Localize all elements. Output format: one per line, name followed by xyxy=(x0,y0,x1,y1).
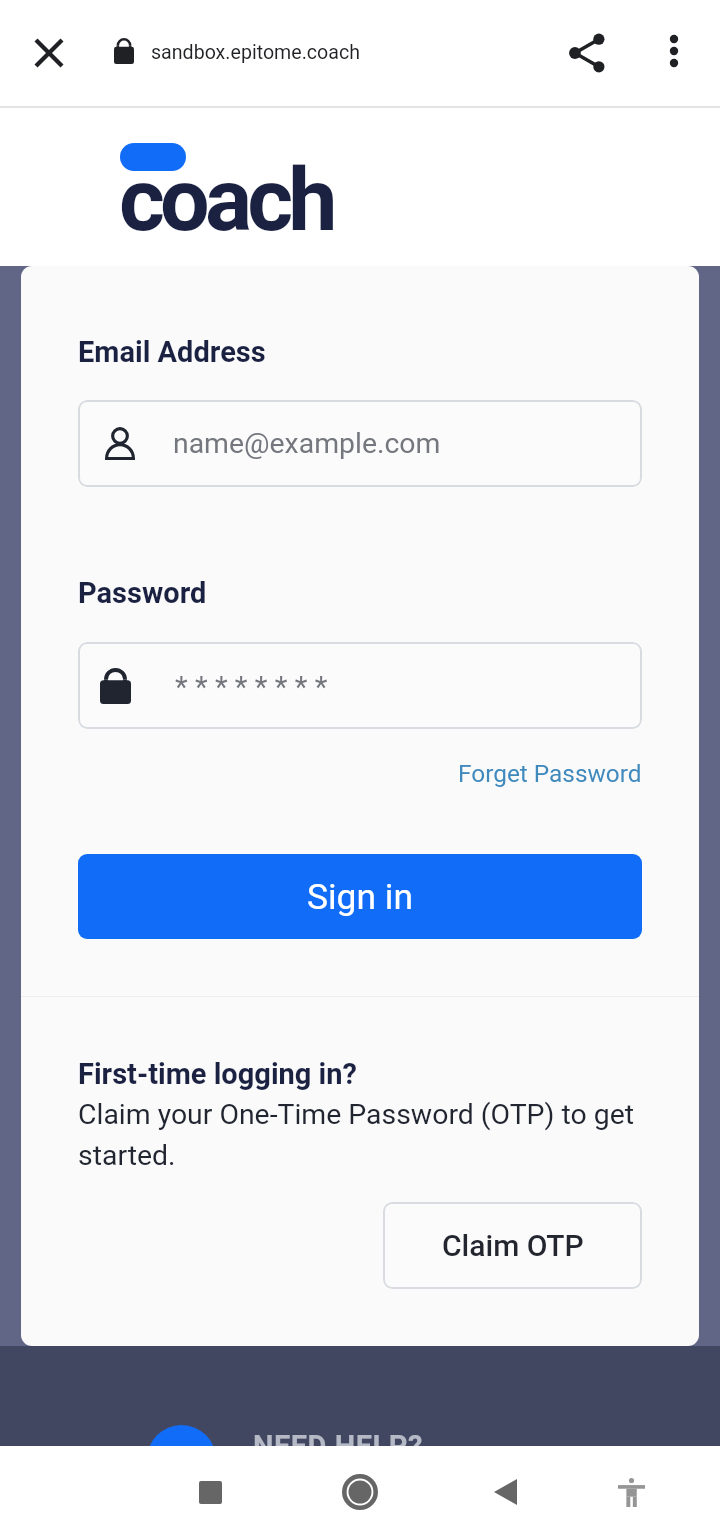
staticText: Claim OTP xyxy=(442,1228,584,1263)
staticText: sandbox.epitome.coach xyxy=(151,41,360,64)
staticText: name@example.com xyxy=(173,427,441,460)
staticText: coach xyxy=(119,148,333,251)
button[interactable]: More options xyxy=(639,0,708,104)
button[interactable]: Forget Password xyxy=(458,759,642,788)
staticText: Claim your One-Time Password (OTP) to ge… xyxy=(78,1098,656,1172)
button[interactable]: Accessibility xyxy=(584,1446,679,1540)
button[interactable]: Need help xyxy=(147,1425,216,1494)
button[interactable]: * * * * * * * * xyxy=(78,642,642,729)
button[interactable]: Back xyxy=(458,1446,553,1540)
staticText: Password xyxy=(78,576,207,610)
button[interactable]: Recent apps xyxy=(163,1446,258,1540)
staticText: Sign in xyxy=(307,876,413,917)
staticText: * * * * * * * * xyxy=(175,670,328,704)
button[interactable]: Share xyxy=(553,0,621,106)
staticText: Email Address xyxy=(78,335,266,369)
button[interactable]: name@example.com xyxy=(78,400,642,487)
button[interactable]: NEED HELP? xyxy=(253,1429,423,1463)
button[interactable]: Home xyxy=(312,1446,407,1540)
staticText: First-time logging in? xyxy=(78,1057,357,1091)
button[interactable]: Close xyxy=(14,0,84,106)
button[interactable]: Claim OTP xyxy=(383,1202,642,1289)
button[interactable]: Sign in xyxy=(78,854,642,939)
